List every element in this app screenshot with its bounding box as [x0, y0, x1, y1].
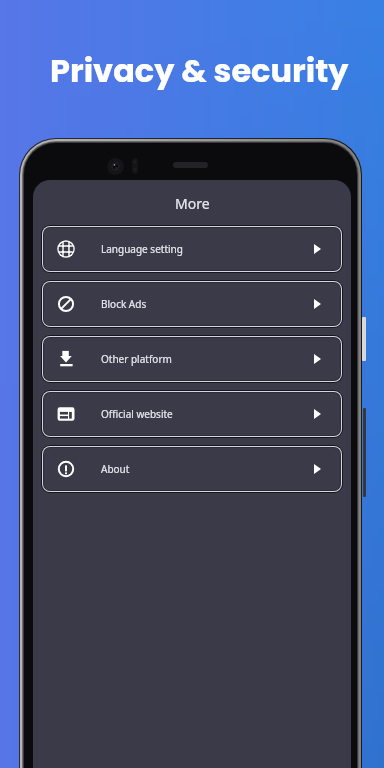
staticText: About — [101, 462, 130, 476]
button[interactable]: About — [41, 445, 343, 493]
button[interactable]: Official website — [41, 390, 343, 438]
staticText: Language setting — [101, 242, 183, 256]
button[interactable]: Language setting — [41, 225, 343, 273]
staticText: Other platform — [101, 352, 172, 366]
staticText: Block Ads — [101, 297, 147, 311]
staticText: Official website — [101, 407, 173, 421]
staticText: Privacy & security — [50, 48, 349, 93]
button[interactable]: Other platform — [41, 335, 343, 383]
button[interactable]: Block Ads — [41, 280, 343, 328]
staticText: More — [175, 194, 210, 213]
